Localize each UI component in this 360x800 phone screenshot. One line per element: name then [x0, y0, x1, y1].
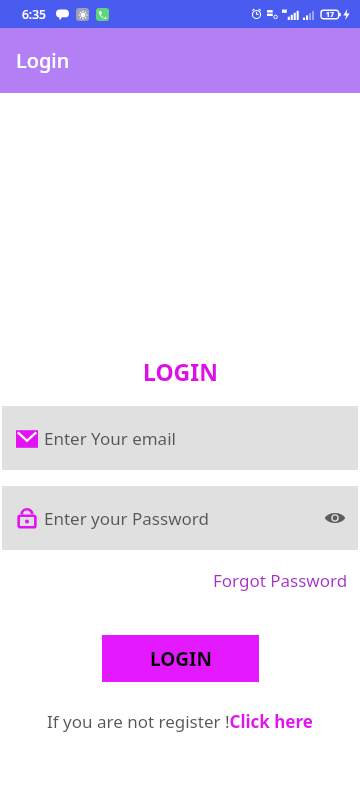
button[interactable]: Forgot Password: [213, 567, 360, 594]
staticText: LOGIN: [150, 646, 212, 672]
button[interactable]: Enter Your email: [2, 406, 358, 470]
staticText: Enter your Password: [44, 507, 209, 530]
staticText: If you are not register !Click here: [47, 710, 313, 733]
button[interactable]: Show password: [312, 501, 358, 535]
staticText: Login: [16, 47, 70, 74]
button[interactable]: Enter your Password: [2, 486, 358, 550]
button[interactable]: LOGIN: [102, 635, 259, 682]
button[interactable]: If you are not register !Click here: [0, 710, 360, 733]
staticText: Enter Your email: [44, 427, 176, 450]
staticText: 6:35: [22, 6, 46, 22]
staticText: Forgot Password: [213, 569, 348, 592]
staticText: 17: [326, 10, 335, 20]
staticText: LOGIN: [143, 356, 218, 387]
